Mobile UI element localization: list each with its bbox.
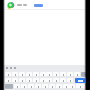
button[interactable] — [60, 78, 66, 83]
button[interactable] — [5, 78, 11, 83]
button[interactable] — [46, 78, 52, 83]
button[interactable] — [49, 84, 55, 89]
button[interactable] — [33, 78, 39, 83]
button[interactable] — [67, 72, 73, 77]
button[interactable] — [14, 84, 20, 89]
button[interactable] — [75, 78, 85, 83]
button[interactable] — [76, 84, 85, 89]
button[interactable] — [35, 84, 41, 89]
button[interactable] — [19, 78, 25, 83]
button[interactable] — [33, 72, 39, 77]
button[interactable] — [63, 84, 69, 89]
button[interactable] — [56, 84, 62, 89]
button[interactable] — [7, 2, 14, 9]
button[interactable] — [53, 72, 59, 77]
button[interactable] — [5, 84, 13, 89]
button[interactable] — [26, 72, 32, 77]
button[interactable] — [46, 72, 52, 77]
button[interactable] — [21, 84, 27, 89]
button[interactable] — [53, 78, 59, 83]
button[interactable] — [74, 72, 80, 77]
button[interactable] — [40, 72, 46, 77]
button[interactable] — [69, 84, 75, 89]
button[interactable] — [81, 72, 86, 77]
button[interactable] — [60, 72, 66, 77]
button[interactable] — [5, 72, 11, 77]
button[interactable] — [26, 78, 32, 83]
button[interactable] — [67, 78, 73, 83]
button[interactable] — [42, 84, 48, 89]
button[interactable] — [19, 72, 25, 77]
button[interactable] — [40, 78, 46, 83]
button[interactable] — [12, 72, 18, 77]
button[interactable] — [12, 78, 18, 83]
button[interactable] — [28, 84, 34, 89]
button[interactable] — [34, 4, 43, 7]
